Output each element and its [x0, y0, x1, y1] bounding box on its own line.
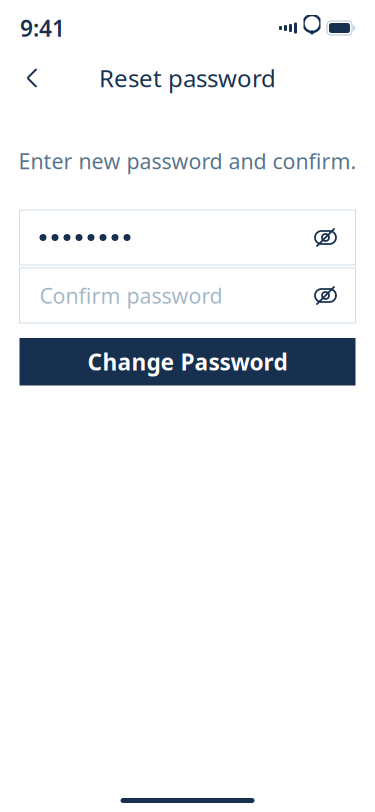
button[interactable]: Show password: [303, 273, 347, 317]
staticText: 9:41: [20, 13, 65, 43]
staticText: Change Password: [87, 347, 287, 377]
button[interactable]: Back: [10, 56, 54, 100]
staticText: Reset password: [99, 62, 276, 94]
button[interactable]: Show password: [303, 215, 347, 259]
staticText: Enter new password and confirm.: [18, 147, 356, 175]
staticText: Confirm password: [39, 281, 222, 310]
button[interactable]: Change Password: [19, 338, 355, 385]
